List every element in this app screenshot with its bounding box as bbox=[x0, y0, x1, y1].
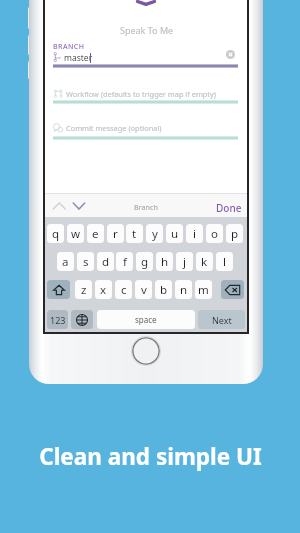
button[interactable]: x bbox=[95, 280, 112, 299]
staticText: o bbox=[211, 226, 218, 242]
staticText: Speak To Me bbox=[120, 24, 174, 36]
staticText: Done bbox=[216, 201, 242, 215]
button[interactable]: d bbox=[97, 252, 114, 271]
button[interactable]: a bbox=[57, 252, 74, 271]
button[interactable]: c bbox=[115, 280, 132, 299]
staticText: c bbox=[121, 282, 127, 298]
staticText: BRANCH bbox=[53, 42, 85, 52]
staticText: v bbox=[141, 282, 147, 298]
button[interactable]: k bbox=[196, 252, 213, 271]
staticText: Branch bbox=[134, 202, 158, 212]
staticText: i bbox=[193, 226, 196, 242]
button[interactable]: p bbox=[226, 224, 243, 243]
staticText: b bbox=[160, 282, 168, 298]
staticText: s bbox=[83, 254, 89, 270]
staticText: n bbox=[180, 282, 188, 298]
staticText: Workflow (defaults to trigger map if emp… bbox=[66, 89, 217, 99]
button[interactable]: j bbox=[176, 252, 193, 271]
button[interactable]: l bbox=[216, 252, 233, 271]
button[interactable]: i bbox=[186, 224, 203, 243]
button[interactable]: z bbox=[75, 280, 92, 299]
button[interactable]: o bbox=[206, 224, 223, 243]
staticText: k bbox=[201, 254, 208, 270]
staticText: a bbox=[62, 254, 69, 270]
button[interactable]: t bbox=[126, 224, 143, 243]
staticText: l bbox=[223, 254, 226, 270]
staticText: g bbox=[141, 254, 149, 270]
staticText: y bbox=[152, 226, 158, 242]
button[interactable]: Next field bbox=[71, 200, 87, 212]
staticText: m bbox=[198, 282, 209, 298]
button[interactable]: f bbox=[116, 252, 133, 271]
staticText: Clean and simple UI bbox=[39, 441, 262, 472]
staticText: t bbox=[132, 226, 137, 242]
button[interactable]: b bbox=[155, 280, 172, 299]
button[interactable]: Switch keyboard bbox=[71, 310, 93, 329]
button[interactable]: e bbox=[87, 224, 104, 243]
staticText: z bbox=[81, 282, 87, 298]
staticText: u bbox=[171, 226, 179, 242]
button[interactable]: Next bbox=[198, 310, 245, 329]
staticText: master bbox=[64, 52, 93, 64]
button[interactable]: v bbox=[135, 280, 152, 299]
button[interactable]: s bbox=[77, 252, 94, 271]
button[interactable]: space bbox=[97, 310, 195, 329]
button[interactable]: Numbers bbox=[47, 310, 68, 329]
staticText: w bbox=[71, 226, 81, 242]
button[interactable]: r bbox=[107, 224, 124, 243]
staticText: Next bbox=[212, 314, 232, 326]
staticText: f bbox=[123, 254, 127, 270]
staticText: d bbox=[102, 254, 110, 270]
staticText: Commit message (optional) bbox=[66, 123, 162, 133]
staticText: r bbox=[113, 226, 118, 242]
button[interactable]: g bbox=[136, 252, 153, 271]
button[interactable]: Previous field bbox=[51, 200, 67, 212]
button[interactable]: Done bbox=[211, 197, 243, 214]
staticText: 123 bbox=[50, 314, 66, 326]
button[interactable]: u bbox=[166, 224, 183, 243]
button[interactable]: h bbox=[156, 252, 173, 271]
button[interactable]: Backspace bbox=[221, 280, 244, 299]
button[interactable]: m bbox=[195, 280, 212, 299]
button[interactable]: Shift bbox=[47, 280, 70, 299]
staticText: j bbox=[183, 254, 186, 270]
staticText: x bbox=[100, 282, 107, 298]
staticText: space bbox=[135, 314, 157, 325]
button[interactable]: w bbox=[67, 224, 84, 243]
button[interactable]: n bbox=[175, 280, 192, 299]
staticText: h bbox=[161, 254, 169, 270]
staticText: e bbox=[92, 226, 99, 242]
button[interactable]: y bbox=[146, 224, 163, 243]
staticText: p bbox=[231, 226, 239, 242]
staticText: q bbox=[52, 226, 60, 242]
other: Clear bbox=[226, 50, 235, 59]
button[interactable]: q bbox=[47, 224, 64, 243]
